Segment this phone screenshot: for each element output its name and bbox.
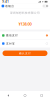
button[interactable]: 收银台 xyxy=(2,4,14,8)
staticText: 深圳创想科技有限公司 xyxy=(10,11,40,14)
staticText: 收银台 xyxy=(5,4,14,8)
button[interactable]: Recents xyxy=(33,94,50,97)
staticText: 支付宝 xyxy=(6,42,15,45)
staticText: 微信支付 xyxy=(6,34,18,37)
button[interactable]: Home xyxy=(17,94,33,97)
staticText: 确认支付 xyxy=(19,52,31,55)
button[interactable]: 确认支付 xyxy=(2,50,47,56)
button[interactable]: 微信支付 xyxy=(0,31,50,39)
staticText: 9:41 xyxy=(2,0,9,3)
button[interactable]: Back xyxy=(0,94,17,97)
staticText: ¥138.00 xyxy=(18,21,31,26)
button[interactable]: More xyxy=(42,4,45,7)
button[interactable]: 支付宝 xyxy=(0,40,50,47)
button[interactable]: Close xyxy=(46,4,48,7)
